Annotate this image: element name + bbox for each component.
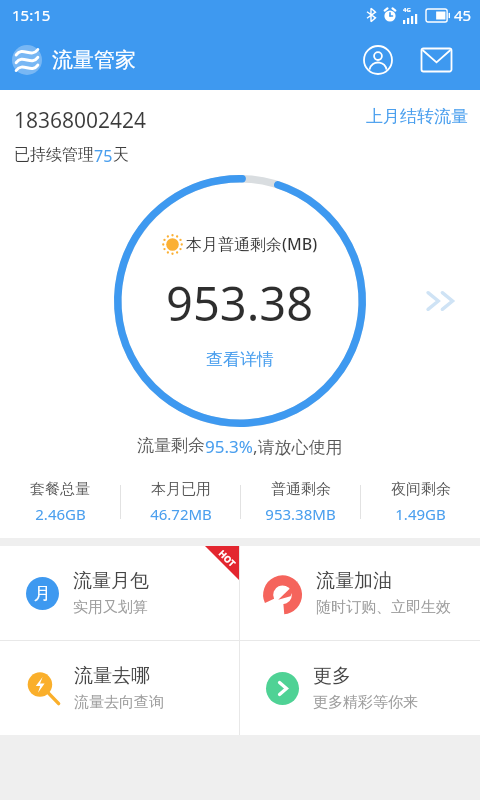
staticText: 46.72MB	[150, 504, 212, 524]
staticText: 流量月包	[73, 569, 149, 593]
button[interactable]: More	[420, 278, 466, 324]
staticText: 流量剩余	[137, 435, 205, 456]
staticText: 18368002424	[14, 106, 147, 135]
button[interactable]: Messages	[414, 38, 458, 82]
staticText: 953.38MB	[265, 504, 336, 524]
staticText: 实用又划算	[73, 598, 148, 617]
staticText: 更多精彩等你来	[313, 693, 418, 712]
staticText: 本月已用	[151, 480, 211, 499]
staticText: 45	[454, 5, 472, 25]
staticText: HOT	[216, 547, 238, 569]
staticText: 随时订购、立即生效	[316, 598, 451, 617]
staticText: 流量去向查询	[74, 693, 164, 712]
button[interactable]: Account	[356, 38, 400, 82]
button[interactable]: 流量管家	[12, 45, 136, 75]
button[interactable]: 流量去哪	[0, 641, 239, 735]
button[interactable]: 套餐总量	[0, 480, 120, 524]
staticText: 套餐总量	[30, 480, 90, 499]
staticText: 普通剩余	[271, 480, 331, 499]
staticText: 95.3%	[205, 435, 253, 458]
staticText: 15:15	[12, 5, 51, 25]
button[interactable]: 本月已用	[121, 480, 240, 524]
button[interactable]: 本月普通剩余(MB)	[113, 174, 367, 428]
staticText: 流量管家	[52, 47, 136, 73]
staticText: 夜间剩余	[391, 480, 451, 499]
staticText: ,请放心使用	[253, 435, 343, 458]
staticText: 1.49GB	[395, 504, 446, 524]
button[interactable]: 夜间剩余	[361, 480, 480, 524]
button[interactable]: 流量加油	[240, 546, 480, 640]
staticText: 953.38	[166, 271, 314, 335]
button[interactable]: 月	[0, 546, 239, 640]
staticText: 月	[34, 583, 51, 604]
staticText: 2.46GB	[35, 504, 86, 524]
staticText: 更多	[313, 664, 351, 688]
staticText: 已持续管理	[14, 145, 94, 165]
staticText: 流量去哪	[74, 664, 150, 688]
button[interactable]: 更多	[240, 641, 480, 735]
button[interactable]: 上月结转流量	[366, 106, 468, 127]
staticText: 天	[113, 145, 129, 165]
button[interactable]: 普通剩余	[241, 480, 360, 524]
button[interactable]: 查看详情	[206, 349, 274, 370]
staticText: 流量加油	[316, 569, 392, 593]
staticText: 本月普通剩余(MB)	[186, 233, 318, 255]
staticText: 75	[94, 145, 113, 167]
staticText: 4G	[403, 6, 411, 14]
